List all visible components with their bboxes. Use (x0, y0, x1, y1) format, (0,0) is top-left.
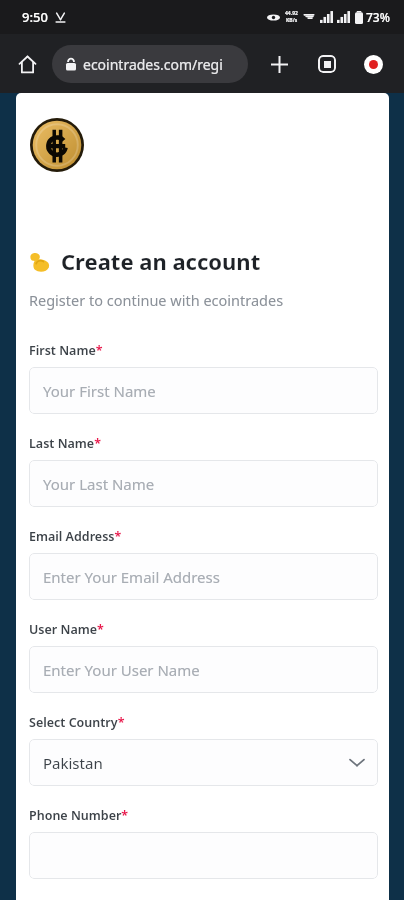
staticText: Enter Your Email Address (43, 567, 220, 587)
staticText: Your First Name (43, 381, 156, 401)
other: ecointrades logo (30, 118, 84, 172)
staticText: 73% (366, 9, 390, 25)
button[interactable]: Pakistan (29, 739, 378, 786)
button[interactable]: ecointrades.com/regi (52, 45, 248, 83)
staticText: Phone Number* (29, 807, 129, 824)
staticText: First Name* (29, 342, 103, 359)
staticText: ecointrades.com/regi (83, 55, 223, 74)
button[interactable]: Your Last Name (29, 460, 378, 507)
button[interactable]: Home (10, 47, 44, 81)
staticText: User Name* (29, 621, 104, 638)
staticText: Your Last Name (43, 474, 155, 494)
button[interactable]: New tab (262, 47, 296, 81)
staticText: Email Address* (29, 528, 122, 545)
staticText: Create an account (61, 246, 261, 276)
button[interactable]: Your First Name (29, 367, 378, 414)
staticText: Select Country* (29, 714, 125, 731)
staticText: KB/s (286, 17, 298, 24)
staticText: Last Name* (29, 435, 101, 452)
staticText: 44.92 (285, 10, 298, 17)
button[interactable] (29, 832, 378, 879)
button[interactable]: Account (356, 47, 390, 81)
button[interactable]: Switch tabs (310, 47, 344, 81)
staticText: Pakistan (43, 753, 103, 773)
staticText: Register to continue with ecointrades (29, 290, 284, 310)
button[interactable]: Enter Your User Name (29, 646, 378, 693)
button[interactable]: Enter Your Email Address (29, 553, 378, 600)
staticText: Enter Your User Name (43, 660, 200, 680)
staticText: 9:50 (22, 8, 48, 26)
